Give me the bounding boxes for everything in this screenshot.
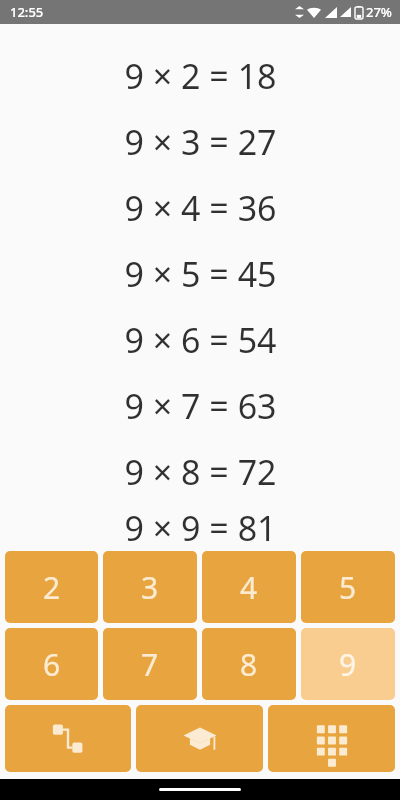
staticText: 9 (339, 644, 357, 685)
staticText: 12:55 (10, 3, 44, 21)
staticText: 9 × 9 = 81 (124, 505, 277, 551)
button[interactable]: 6 (5, 628, 98, 700)
button[interactable]: 2 (5, 551, 98, 623)
staticText: 9 × 7 = 63 (124, 383, 277, 429)
button[interactable]: 9 × 7 = 63 (0, 373, 400, 439)
staticText: 6 (43, 644, 61, 685)
staticText: 9 × 6 = 54 (124, 317, 277, 363)
button[interactable]: 7 (103, 628, 197, 700)
button[interactable]: 9 × 2 = 18 (0, 43, 400, 109)
button[interactable]: 9 × 6 = 54 (0, 307, 400, 373)
staticText: 2 (43, 567, 61, 608)
button[interactable]: 9 (301, 628, 395, 700)
button[interactable]: 9 × 3 = 27 (0, 109, 400, 175)
staticText: 7 (141, 644, 159, 685)
staticText: 9 × 3 = 27 (124, 119, 277, 165)
staticText: 8 (240, 644, 258, 685)
button[interactable]: 4 (202, 551, 296, 623)
button[interactable]: 9 × 9 = 81 (0, 505, 400, 551)
button[interactable]: 9 × 4 = 36 (0, 175, 400, 241)
staticText: 3 (141, 567, 159, 608)
button[interactable]: 9 × 5 = 45 (0, 241, 400, 307)
button[interactable]: Keypad (268, 705, 395, 772)
button[interactable]: Practice (136, 705, 263, 772)
staticText: 9 × 4 = 36 (124, 185, 277, 231)
staticText: 4 (240, 567, 258, 608)
button[interactable]: 3 (103, 551, 197, 623)
button[interactable]: 9 × 8 = 72 (0, 439, 400, 505)
staticText: 9 × 2 = 18 (124, 53, 277, 99)
staticText: 5 (339, 567, 357, 608)
button[interactable]: 8 (202, 628, 296, 700)
staticText: 27% (366, 3, 392, 21)
button[interactable]: Tables tree (5, 705, 131, 772)
button[interactable]: 5 (301, 551, 395, 623)
staticText: 9 × 5 = 45 (124, 251, 277, 297)
staticText: 9 × 8 = 72 (124, 449, 277, 495)
